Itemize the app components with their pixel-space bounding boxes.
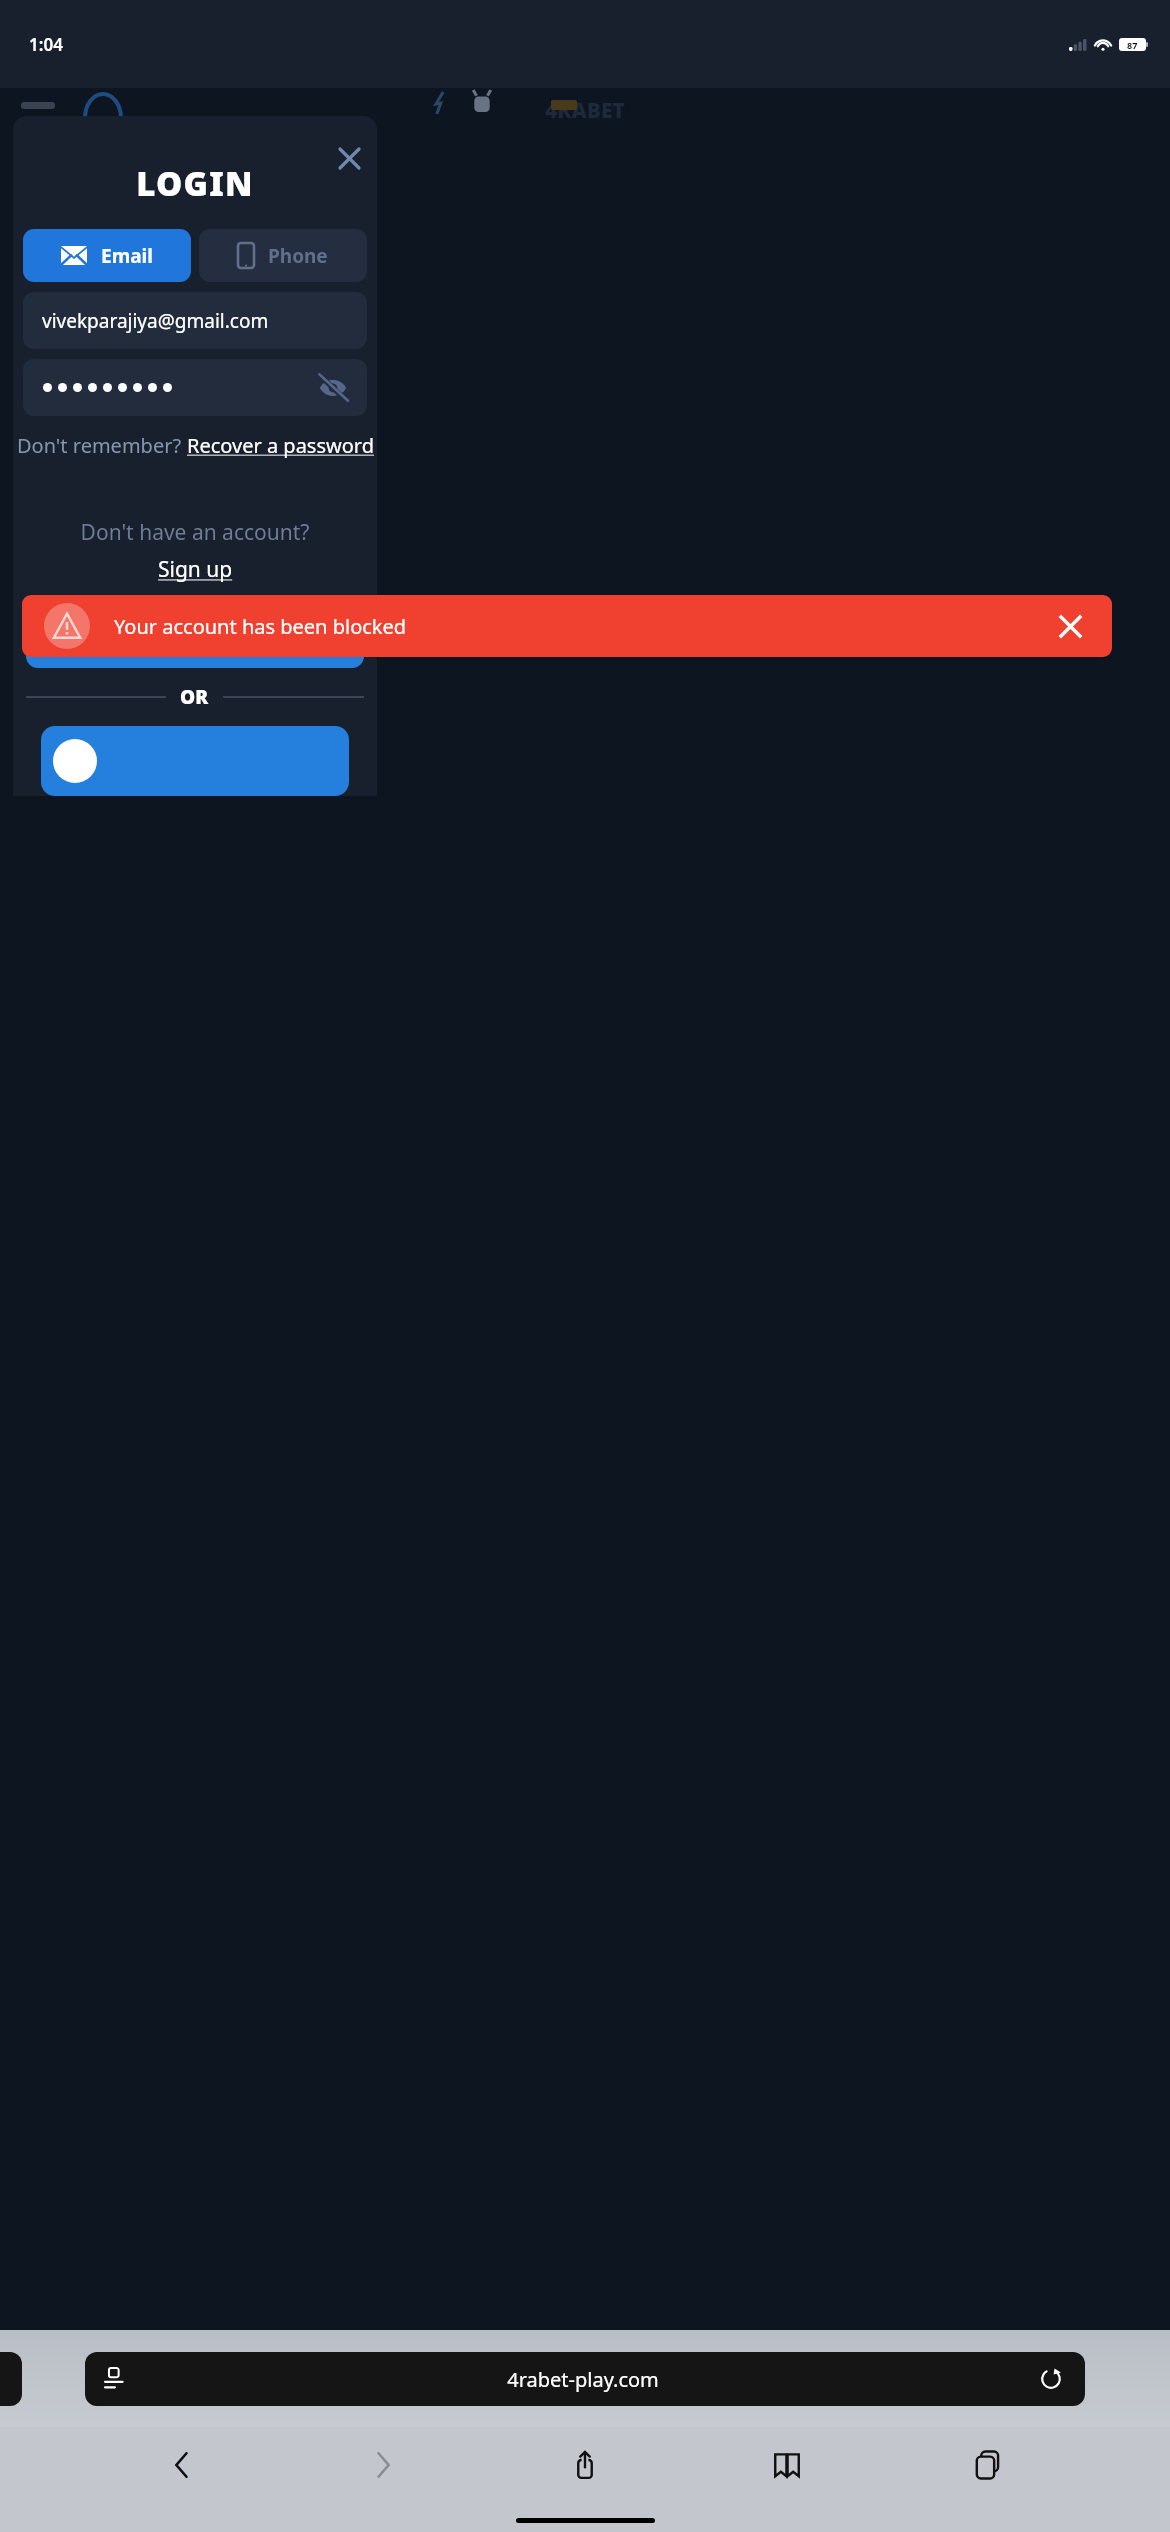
button[interactable]: Page settings <box>85 2352 1085 2406</box>
staticText: Sign up <box>158 555 233 584</box>
button[interactable]: Reload <box>1037 2365 1065 2393</box>
staticText: Recover a password <box>187 432 374 459</box>
staticText: Your account has been blocked <box>114 613 1050 640</box>
staticText: Don't remember? <box>17 432 187 459</box>
button[interactable] <box>41 726 349 796</box>
button[interactable]: Sign up <box>158 555 233 584</box>
staticText: LOGIN <box>13 161 377 206</box>
staticText: OR <box>180 684 209 710</box>
staticText: 1:04 <box>29 33 63 56</box>
staticText: 4rabet-play.com <box>129 2366 1037 2393</box>
staticText: 4RABET <box>545 96 625 125</box>
button[interactable]: Page settings <box>103 2366 129 2392</box>
button[interactable]: Phone <box>199 229 367 282</box>
button[interactable]: SIGN IN <box>26 606 364 668</box>
button[interactable]: Email <box>23 229 191 282</box>
staticText: Don't have an account? <box>13 518 377 547</box>
staticText: Email <box>101 243 153 269</box>
staticText: vivekparajiya@gmail.com <box>42 308 269 334</box>
button[interactable]: vivekparajiya@gmail.com <box>23 292 367 349</box>
button[interactable]: Show password <box>23 359 367 416</box>
staticText: SIGN IN <box>149 623 242 652</box>
button[interactable]: Share <box>555 2435 615 2495</box>
button[interactable]: Bookmarks <box>757 2435 817 2495</box>
button[interactable]: Back <box>152 2435 212 2495</box>
button[interactable]: Dismiss <box>1050 606 1090 646</box>
button[interactable]: Show password <box>309 364 357 412</box>
staticText: 87 <box>1127 39 1138 51</box>
button[interactable]: Close <box>329 138 369 178</box>
button[interactable]: Forward <box>353 2435 413 2495</box>
staticText: Phone <box>268 243 328 269</box>
button[interactable]: Recover a password <box>187 432 374 459</box>
button[interactable]: Tabs <box>958 2435 1018 2495</box>
